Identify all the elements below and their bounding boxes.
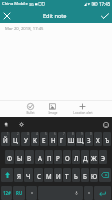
button[interactable]: Keyboard settings bbox=[17, 120, 26, 129]
staticText: Ы bbox=[17, 154, 23, 162]
staticText: 8 bbox=[72, 132, 74, 136]
staticText: 3 bbox=[27, 132, 29, 136]
button[interactable]: Ч bbox=[24, 168, 33, 182]
staticText: Location alert bbox=[73, 111, 93, 115]
staticText: 3G bbox=[29, 2, 34, 7]
button[interactable]: Save note bbox=[98, 9, 112, 23]
staticText: Л bbox=[74, 154, 79, 162]
staticText: Б bbox=[83, 172, 87, 180]
button[interactable]: И bbox=[54, 168, 62, 182]
button[interactable]: Shift bbox=[1, 168, 13, 182]
staticText: 9 bbox=[81, 132, 83, 136]
staticText: Ю bbox=[91, 172, 98, 180]
staticText: В bbox=[27, 154, 32, 162]
button[interactable]: Location alert bbox=[71, 101, 94, 117]
button[interactable]: Р bbox=[54, 150, 62, 164]
staticText: К bbox=[33, 136, 37, 144]
staticText: Mar 20, 2018, 17:45 bbox=[5, 26, 44, 32]
staticText: З bbox=[87, 136, 91, 144]
button[interactable]: Ф bbox=[5, 150, 14, 164]
button[interactable]: Я bbox=[14, 168, 23, 182]
staticText: Ш bbox=[68, 136, 75, 144]
button[interactable]: Б bbox=[81, 168, 89, 182]
staticText: Й bbox=[3, 136, 8, 144]
button[interactable]: Backspace bbox=[99, 168, 111, 182]
button[interactable]: Comma bbox=[26, 186, 37, 200]
staticText: Х bbox=[96, 136, 100, 144]
staticText: 7 bbox=[63, 132, 65, 136]
button[interactable]: Х bbox=[94, 132, 102, 146]
button[interactable]: О bbox=[63, 150, 71, 164]
staticText: Bullet bbox=[26, 111, 35, 115]
staticText: Image bbox=[48, 111, 58, 115]
button[interactable]: Period bbox=[84, 186, 93, 200]
staticText: 0 bbox=[90, 132, 92, 136]
staticText: Э bbox=[101, 154, 106, 162]
button[interactable]: В bbox=[25, 150, 34, 164]
staticText: Ц bbox=[13, 136, 18, 144]
staticText: RU bbox=[16, 190, 23, 196]
button[interactable]: П bbox=[45, 150, 53, 164]
button[interactable]: Bullet bbox=[19, 101, 42, 117]
staticText: 4 bbox=[36, 132, 38, 136]
button[interactable]: 6 bbox=[49, 132, 57, 146]
button[interactable]: Э bbox=[99, 150, 107, 164]
button[interactable]: Ы bbox=[15, 150, 24, 164]
staticText: Щ bbox=[77, 136, 84, 144]
staticText: Р bbox=[56, 154, 60, 162]
button[interactable]: 2 bbox=[11, 132, 20, 146]
staticText: 12# bbox=[3, 190, 11, 196]
staticText: 2 bbox=[17, 132, 19, 136]
staticText: Т bbox=[65, 172, 69, 180]
button[interactable]: Ь bbox=[72, 168, 80, 182]
staticText: Е bbox=[42, 136, 46, 144]
staticText: 1 bbox=[7, 132, 9, 136]
staticText: Н bbox=[51, 136, 56, 144]
button[interactable]: Ъ bbox=[103, 132, 111, 146]
staticText: Я bbox=[17, 172, 21, 180]
button[interactable]: 3 bbox=[21, 132, 30, 146]
button[interactable]: RU bbox=[13, 186, 25, 200]
button[interactable]: 4 bbox=[31, 132, 39, 146]
staticText: Edit note bbox=[43, 12, 67, 20]
button[interactable]: А bbox=[35, 150, 44, 164]
button[interactable]: Close bbox=[0, 9, 14, 23]
button[interactable]: С bbox=[34, 168, 43, 182]
button[interactable]: 5 bbox=[40, 132, 48, 146]
staticText: China Mobile bbox=[2, 1, 28, 7]
button[interactable]: 8 bbox=[67, 132, 75, 146]
staticText: Ь bbox=[74, 172, 78, 180]
staticText: Г bbox=[60, 136, 64, 144]
staticText: О bbox=[65, 154, 70, 162]
staticText: А bbox=[38, 154, 42, 162]
staticText: М bbox=[46, 172, 52, 180]
button[interactable]: Т bbox=[63, 168, 71, 182]
button[interactable]: Ж bbox=[90, 150, 98, 164]
button[interactable]: Emoji bbox=[101, 120, 110, 129]
button[interactable]: Space bbox=[38, 186, 83, 200]
button[interactable]: Enter bbox=[94, 186, 111, 200]
staticText: 5 bbox=[45, 132, 47, 136]
staticText: 17:45 bbox=[99, 1, 111, 7]
staticText: Ж bbox=[91, 154, 97, 162]
button[interactable]: 0 bbox=[85, 132, 93, 146]
staticText: У bbox=[24, 136, 28, 144]
button[interactable]: М bbox=[44, 168, 53, 182]
button[interactable]: 9 bbox=[76, 132, 84, 146]
button[interactable]: 12# bbox=[1, 186, 12, 200]
staticText: Ъ bbox=[105, 136, 110, 144]
button[interactable]: Л bbox=[72, 150, 80, 164]
button[interactable]: Д bbox=[81, 150, 89, 164]
staticText: С bbox=[37, 172, 41, 180]
staticText: Ч bbox=[26, 172, 31, 180]
staticText: П bbox=[47, 154, 52, 162]
button[interactable]: 7 bbox=[58, 132, 66, 146]
staticText: 6 bbox=[54, 132, 56, 136]
button[interactable]: Image bbox=[41, 101, 64, 117]
staticText: Ф bbox=[7, 154, 13, 162]
button[interactable]: Stickers bbox=[2, 120, 11, 129]
staticText: И bbox=[56, 172, 61, 180]
staticText: Д bbox=[83, 154, 88, 162]
button[interactable]: 1 bbox=[1, 132, 10, 146]
button[interactable]: Ю bbox=[90, 168, 98, 182]
